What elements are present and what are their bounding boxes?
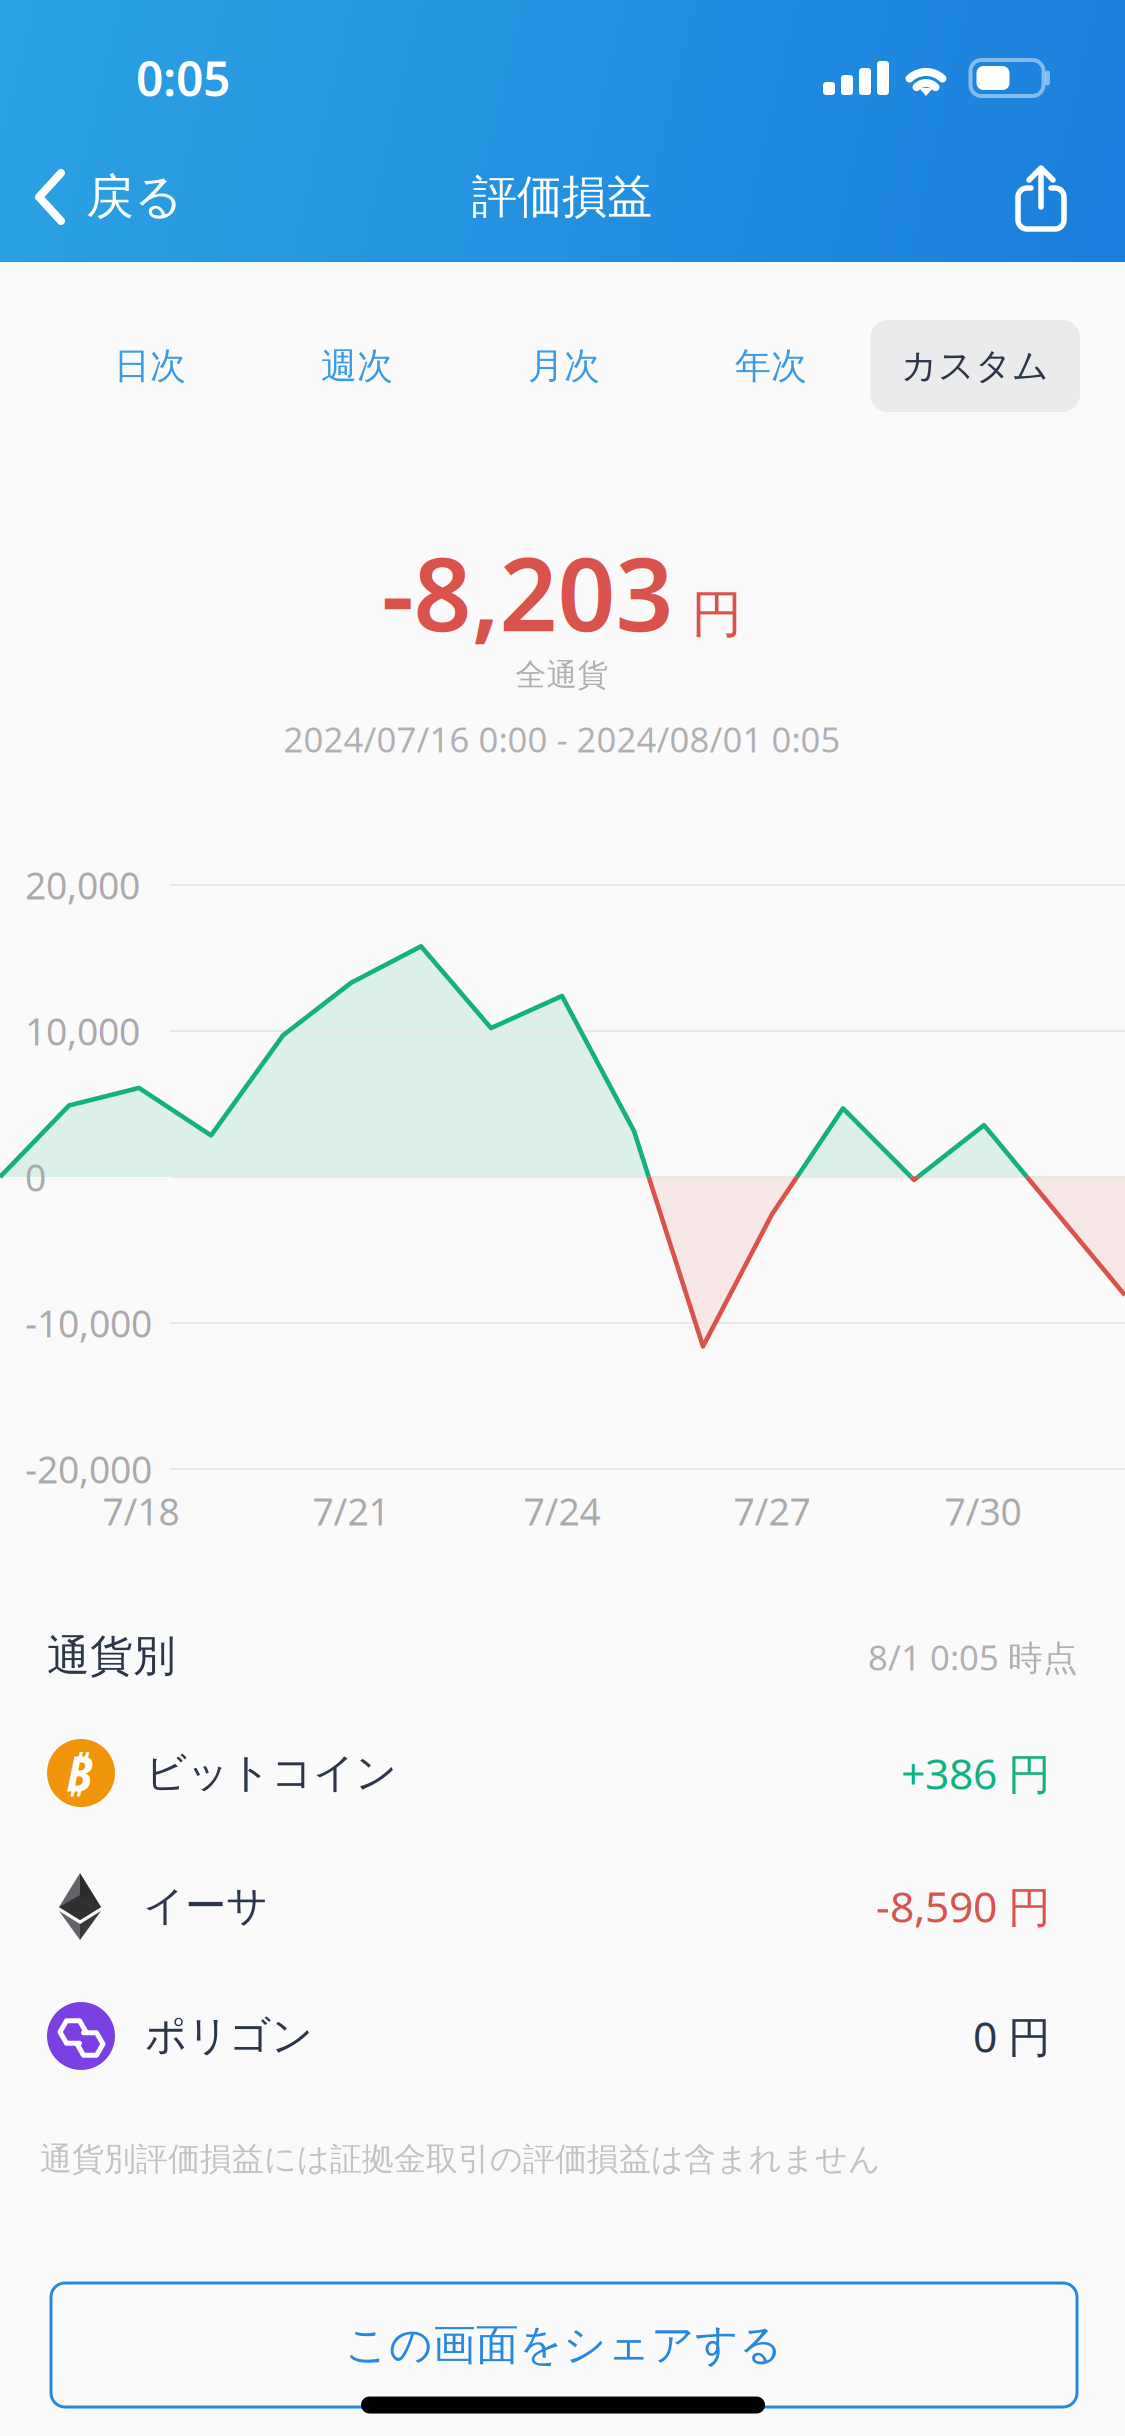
button[interactable]: イーサ xyxy=(47,1846,1051,1966)
button[interactable]: ポリゴン xyxy=(47,1976,1051,2096)
staticText: 7/21 xyxy=(312,1486,389,1536)
staticText: 0:05 xyxy=(136,46,230,110)
staticText: 2024/07/16 0:00 - 2024/08/01 0:05 xyxy=(283,716,840,762)
staticText: 7/24 xyxy=(523,1486,600,1536)
button[interactable]: 戻る xyxy=(0,141,300,253)
staticText: 通貨別評価損益には証拠金取引の評価損益は含まれません xyxy=(40,2139,881,2179)
button[interactable]: 日次 xyxy=(60,320,240,412)
staticText: この画面をシェアする xyxy=(345,2319,783,2371)
staticText: -8,590 円 xyxy=(876,1878,1051,1934)
staticText: ビットコイン xyxy=(145,1748,397,1798)
staticText: 7/27 xyxy=(733,1486,810,1536)
button[interactable]: この画面をシェアする xyxy=(51,2283,1077,2407)
staticText: 年次 xyxy=(735,344,807,388)
button[interactable]: 月次 xyxy=(474,320,654,412)
staticText: カスタム xyxy=(901,344,1049,388)
staticText: 円 xyxy=(691,583,742,645)
staticText: 7/30 xyxy=(944,1486,1021,1536)
staticText: ポリゴン xyxy=(145,2011,313,2061)
staticText: 通貨別 xyxy=(47,1630,176,1682)
staticText: 7/18 xyxy=(102,1486,179,1536)
staticText: イーサ xyxy=(143,1881,268,1931)
button[interactable]: シェア xyxy=(986,142,1096,254)
staticText: 0 xyxy=(25,1152,46,1202)
staticText: -8,203 xyxy=(381,525,673,659)
staticText: 全通貨 xyxy=(515,656,608,694)
staticText: 月次 xyxy=(528,344,600,388)
staticText: 評価損益 xyxy=(472,169,652,225)
staticText: 0 円 xyxy=(973,2008,1051,2064)
button[interactable]: ₿ xyxy=(47,1713,1051,1833)
staticText: 20,000 xyxy=(25,860,140,910)
staticText: 戻る xyxy=(86,167,183,226)
staticText: -10,000 xyxy=(25,1298,152,1348)
button[interactable]: カスタム xyxy=(870,320,1080,412)
staticText: 週次 xyxy=(321,344,393,388)
staticText: +386 円 xyxy=(901,1745,1051,1801)
button[interactable]: 週次 xyxy=(267,320,447,412)
staticText: ₿ xyxy=(66,1741,92,1805)
staticText: 10,000 xyxy=(25,1006,140,1056)
button[interactable]: 年次 xyxy=(681,320,861,412)
staticText: -20,000 xyxy=(25,1444,152,1494)
staticText: 8/1 0:05 時点 xyxy=(868,1634,1078,1680)
staticText: 日次 xyxy=(114,344,186,388)
